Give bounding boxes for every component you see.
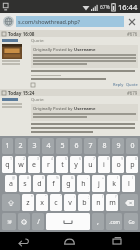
button[interactable]: Back [0, 232, 46, 250]
button[interactable]: 6 [70, 138, 82, 154]
button[interactable]: p [126, 156, 138, 173]
button[interactable]: Today 16:08 [2, 30, 138, 37]
staticText: 2 [23, 156, 25, 161]
staticText: #679 [127, 90, 138, 96]
button[interactable]: Page info [3, 16, 14, 27]
button[interactable]: c [50, 194, 62, 211]
staticText: 5 [60, 141, 65, 151]
button[interactable]: Home [46, 232, 93, 250]
staticText: c [54, 198, 58, 208]
staticText: 3 [37, 156, 39, 161]
staticText: @ [12, 175, 16, 180]
button[interactable]: u [84, 156, 96, 173]
button[interactable]: Attached image [2, 44, 22, 59]
button[interactable]: Username [74, 106, 96, 112]
button[interactable]: h [77, 175, 90, 192]
staticText: 4 [51, 156, 53, 161]
staticText: f [52, 179, 55, 189]
button[interactable]: 7 [84, 138, 96, 154]
staticText: ' [60, 194, 61, 199]
button[interactable]: n [92, 194, 104, 211]
button[interactable]: v [64, 194, 76, 211]
staticText: q [5, 160, 10, 170]
button[interactable]: 1 [2, 138, 13, 154]
button[interactable]: 8 [98, 138, 110, 154]
button[interactable]: Keyboard settings [18, 213, 30, 230]
button[interactable]: t [56, 156, 68, 173]
button[interactable]: y [70, 156, 82, 173]
staticText: Today 16:08 [8, 31, 35, 37]
staticText: ( [117, 175, 119, 180]
button[interactable]: Shift [2, 194, 20, 211]
staticText: #676 [127, 31, 138, 37]
staticText: y [74, 160, 78, 170]
staticText: 5 [65, 156, 67, 161]
button[interactable]: g [62, 175, 75, 192]
button[interactable]: Space [46, 213, 90, 230]
button[interactable]: a [5, 175, 17, 192]
button[interactable]: s [19, 175, 31, 192]
staticText: s.com/showthread.php?p=10209740#post1020… [18, 18, 122, 25]
button[interactable]: f [47, 175, 60, 192]
staticText: 0 [135, 156, 137, 161]
button[interactable]: k [107, 175, 120, 192]
button[interactable]: x [36, 194, 48, 211]
staticText: 7 [88, 141, 93, 151]
button[interactable]: 3 [28, 138, 40, 154]
staticText: 67% [100, 4, 110, 11]
staticText: % [56, 175, 59, 180]
button[interactable]: 0 [126, 138, 138, 154]
staticText: x [40, 198, 44, 208]
button[interactable]: Today 15:24 [2, 89, 138, 96]
button[interactable]: o [112, 156, 124, 173]
button[interactable]: , [92, 213, 104, 230]
staticText: l [128, 179, 130, 189]
staticText: 1 [5, 141, 10, 151]
button[interactable]: l [122, 175, 135, 192]
staticText: j [98, 179, 100, 189]
button[interactable]: d [33, 175, 45, 192]
button[interactable]: Stop loading [126, 16, 137, 27]
staticText: i [103, 160, 105, 170]
staticText: z [26, 198, 30, 208]
button[interactable]: !# [2, 213, 16, 230]
staticText: v [68, 198, 72, 208]
staticText: o [116, 160, 121, 170]
button[interactable]: e [28, 156, 40, 173]
button[interactable]: s.com/showthread.php?p=10209740#post1020… [16, 16, 124, 27]
button[interactable]: Quote [126, 82, 138, 87]
staticText: + [102, 175, 104, 180]
button[interactable]: z [22, 194, 34, 211]
button[interactable]: Reply [113, 82, 124, 87]
button[interactable]: Recents [93, 232, 140, 250]
button[interactable]: / [32, 213, 44, 230]
staticText: t [61, 160, 64, 170]
button[interactable]: Go [124, 213, 138, 230]
button[interactable]: 5 [56, 138, 68, 154]
staticText: a [9, 179, 13, 189]
button[interactable]: i [98, 156, 110, 173]
button[interactable]: q [2, 156, 13, 173]
staticText: r [47, 160, 50, 170]
button[interactable]: m [106, 194, 118, 211]
staticText: : [74, 194, 75, 199]
button[interactable]: b [78, 194, 90, 211]
staticText: 1 [10, 156, 12, 161]
button[interactable]: 2 [15, 138, 26, 154]
staticText: 2 [18, 141, 23, 151]
staticText: * [31, 194, 33, 199]
button[interactable]: 4 [42, 138, 54, 154]
button[interactable]: Delete [120, 194, 138, 211]
button[interactable]: j [92, 175, 105, 192]
staticText: h [81, 179, 86, 189]
button[interactable]: Username [74, 47, 96, 53]
button[interactable]: .com [106, 213, 122, 230]
staticText: 6 [74, 141, 79, 151]
staticText: w [18, 160, 24, 170]
button[interactable]: w [15, 156, 26, 173]
button[interactable]: 9 [112, 138, 124, 154]
staticText: 7 [93, 156, 95, 161]
button[interactable]: r [42, 156, 54, 173]
